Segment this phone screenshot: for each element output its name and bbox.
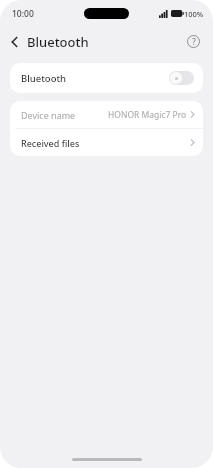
- staticText: 10:00: [12, 8, 34, 20]
- button[interactable]: Help: [185, 33, 202, 50]
- staticText: HONOR Magic7 Pro: [108, 109, 187, 121]
- button[interactable]: Device name: [10, 101, 203, 128]
- staticText: ?: [192, 36, 196, 47]
- button[interactable]: Received files: [10, 129, 203, 156]
- staticText: Bluetooth: [21, 72, 67, 85]
- staticText: Device name: [21, 109, 76, 121]
- staticText: Received files: [21, 137, 80, 149]
- staticText: 100%: [184, 9, 204, 19]
- button[interactable]: Bluetooth: [10, 63, 203, 93]
- button[interactable]: Bluetooth toggle: [169, 71, 194, 85]
- button[interactable]: Back: [11, 36, 21, 48]
- staticText: Bluetooth: [27, 33, 89, 51]
